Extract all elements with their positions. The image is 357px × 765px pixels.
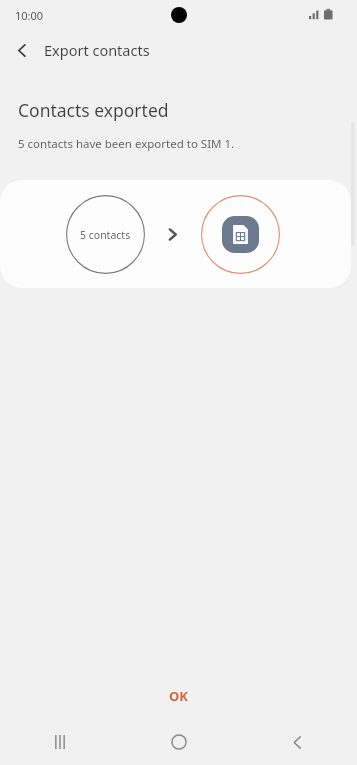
staticText: Export contacts bbox=[44, 40, 150, 60]
staticText: OK bbox=[169, 687, 188, 705]
button[interactable]: 5 contacts bbox=[66, 195, 145, 274]
button[interactable]: Home bbox=[119, 719, 238, 765]
staticText: 10:00 bbox=[15, 8, 44, 23]
button[interactable]: Back bbox=[0, 30, 44, 70]
staticText: 5 contacts bbox=[80, 228, 131, 242]
button[interactable]: Back bbox=[238, 719, 357, 765]
staticText: 5 contacts have been exported to SIM 1. bbox=[18, 136, 235, 152]
button[interactable]: SIM 1 bbox=[201, 195, 280, 274]
staticText: Contacts exported bbox=[18, 98, 169, 122]
button[interactable]: Recent apps bbox=[0, 719, 119, 765]
button[interactable]: OK bbox=[0, 673, 357, 719]
